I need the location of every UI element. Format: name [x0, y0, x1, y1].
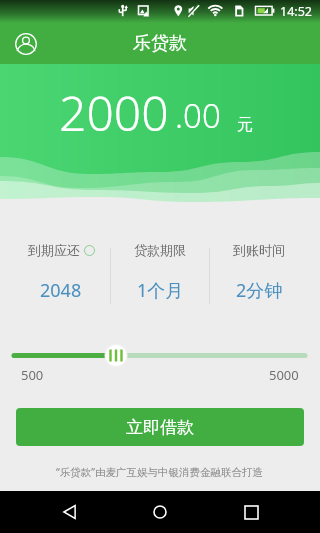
button[interactable]: Home — [139, 491, 181, 533]
staticText: 2048 — [40, 278, 82, 303]
staticText: 500 — [21, 366, 44, 384]
button[interactable]: 到账时间 — [210, 240, 308, 300]
button[interactable]: 立即借款 — [16, 408, 304, 446]
staticText: 元 — [237, 115, 253, 135]
staticText: 2分钟 — [236, 278, 283, 303]
button[interactable]: Recents — [230, 491, 272, 533]
staticText: 乐贷款 — [133, 32, 187, 55]
button[interactable]: Profile — [15, 33, 37, 55]
staticText: 14:52 — [280, 3, 312, 20]
staticText: 立即借款 — [126, 417, 194, 438]
button[interactable]: Back — [49, 491, 91, 533]
staticText: .00 — [175, 93, 221, 138]
staticText: 5000 — [269, 366, 299, 384]
staticText: 2000 — [59, 80, 169, 145]
staticText: 到期应还 — [28, 242, 80, 258]
button[interactable]: 到期应还 — [12, 240, 110, 300]
staticText: 到账时间 — [233, 242, 285, 258]
staticText: 贷款期限 — [134, 242, 186, 258]
button[interactable]: 贷款期限 — [111, 240, 209, 300]
staticText: 1个月 — [137, 278, 184, 303]
staticText: “乐贷款”由麦广互娱与中银消费金融联合打造 — [56, 465, 264, 479]
